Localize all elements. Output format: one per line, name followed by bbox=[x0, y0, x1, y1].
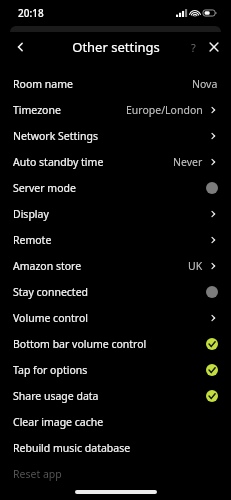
staticText: Reset app bbox=[13, 467, 62, 481]
staticText: Never bbox=[173, 155, 203, 169]
button[interactable]: Display bbox=[0, 201, 231, 227]
button[interactable]: Volume control bbox=[0, 305, 231, 331]
button[interactable]: Timezone bbox=[0, 97, 231, 123]
button[interactable]: Tap for options bbox=[0, 357, 231, 383]
staticText: UK bbox=[188, 259, 203, 273]
staticText: Other settings bbox=[72, 38, 160, 56]
button[interactable]: Amazon store bbox=[0, 253, 231, 279]
staticText: Remote bbox=[13, 233, 52, 247]
button[interactable]: Remote bbox=[0, 227, 231, 253]
button[interactable]: Share usage data bbox=[0, 383, 231, 409]
staticText: Amazon store bbox=[13, 259, 82, 273]
staticText: Clear image cache bbox=[13, 415, 104, 429]
staticText: Nova bbox=[192, 77, 218, 91]
staticText: Auto standby time bbox=[13, 155, 104, 169]
staticText: Network Settings bbox=[13, 129, 98, 143]
staticText: Stay connected bbox=[13, 285, 89, 299]
button[interactable]: Reset app bbox=[0, 461, 231, 487]
button[interactable]: Network Settings bbox=[0, 123, 231, 149]
staticText: Tap for options bbox=[13, 363, 88, 377]
staticText: 20:18 bbox=[18, 6, 44, 20]
staticText: Share usage data bbox=[13, 389, 99, 403]
staticText: Timezone bbox=[13, 103, 61, 117]
staticText: Display bbox=[13, 207, 49, 221]
staticText: Server mode bbox=[13, 181, 76, 195]
button[interactable]: Back bbox=[10, 36, 32, 58]
button[interactable]: Help bbox=[183, 37, 203, 57]
staticText: Europe/London bbox=[126, 103, 203, 117]
button[interactable]: Bottom bar volume control bbox=[0, 331, 231, 357]
button[interactable]: Stay connected bbox=[0, 279, 231, 305]
button[interactable]: Rebuild music database bbox=[0, 435, 231, 461]
staticText: ? bbox=[191, 40, 196, 55]
button[interactable]: Room name bbox=[0, 71, 231, 97]
staticText: Volume control bbox=[13, 311, 88, 325]
button[interactable]: Clear image cache bbox=[0, 409, 231, 435]
button[interactable]: Auto standby time bbox=[0, 149, 231, 175]
staticText: Bottom bar volume control bbox=[13, 337, 147, 351]
button[interactable]: Close bbox=[203, 36, 225, 58]
staticText: Room name bbox=[13, 77, 73, 91]
staticText: Rebuild music database bbox=[13, 441, 131, 455]
button[interactable]: Server mode bbox=[0, 175, 231, 201]
